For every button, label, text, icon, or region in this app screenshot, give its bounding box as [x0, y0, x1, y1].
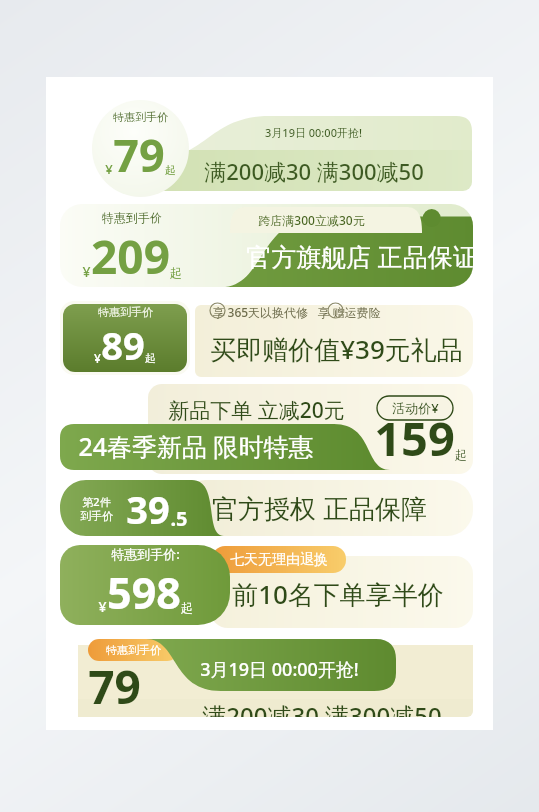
button[interactable]: 跨店满300立减30元	[60, 204, 473, 287]
staticText: 前10名下单享半价	[232, 576, 444, 612]
staticText: 起	[145, 351, 156, 365]
staticText: ¥	[105, 160, 113, 178]
staticText: 享 365天以换代修 享 赠运费险	[212, 304, 381, 320]
button[interactable]: 官方授权 正品保障	[60, 480, 473, 536]
staticText: 新品下单 立减20元	[168, 396, 345, 425]
staticText: 3月19日 00:00开抢!	[265, 125, 362, 140]
staticText: 特惠到手价	[106, 643, 161, 657]
staticText: 79	[113, 124, 165, 185]
staticText: 特惠到手价	[98, 305, 153, 319]
staticText: 159	[374, 406, 455, 470]
staticText: 第2件	[82, 494, 111, 509]
staticText: 起	[455, 447, 467, 462]
staticText: 39	[126, 483, 170, 535]
staticText: 满200减30 满300减50	[202, 699, 442, 717]
staticText: 官方旗舰店 正品保证	[246, 239, 473, 273]
button[interactable]: 特惠到手价	[60, 637, 473, 717]
staticText: 起	[181, 600, 193, 615]
staticText: 特惠到手价	[113, 110, 168, 124]
staticText: ¥	[94, 350, 101, 366]
staticText: 七天无理由退换	[230, 551, 328, 569]
staticText: 209	[91, 225, 170, 287]
staticText: 特惠到手价:	[111, 545, 180, 563]
button[interactable]: 七天无理由退换	[60, 545, 473, 628]
staticText: 满200减30 满300减50	[204, 156, 424, 186]
staticText: 跨店满300立减30元	[258, 212, 365, 228]
staticText: 到手价	[80, 509, 113, 523]
staticText: ¥	[98, 597, 107, 616]
staticText: 24春季新品 限时特惠	[78, 429, 314, 463]
staticText: 起	[170, 265, 182, 280]
staticText: 活动价¥	[392, 399, 439, 417]
button[interactable]: 享 365天以换代修 享 赠运费险	[60, 297, 473, 377]
staticText: 特惠到手价	[102, 210, 162, 225]
staticText: 89	[101, 319, 145, 371]
staticText: 79	[88, 655, 141, 717]
button[interactable]: 新品下单 立减20元	[60, 384, 473, 474]
staticText: 3月19日 00:00开抢!	[200, 657, 359, 682]
staticText: 买即赠价值¥39元礼品	[210, 331, 463, 367]
staticText: 598	[107, 563, 181, 622]
staticText: ¥	[82, 262, 91, 281]
staticText: 起	[165, 163, 176, 177]
button[interactable]: 满200减30 满300减50	[60, 88, 493, 191]
staticText: 官方授权 正品保障	[212, 490, 427, 526]
staticText: .5	[170, 505, 188, 532]
